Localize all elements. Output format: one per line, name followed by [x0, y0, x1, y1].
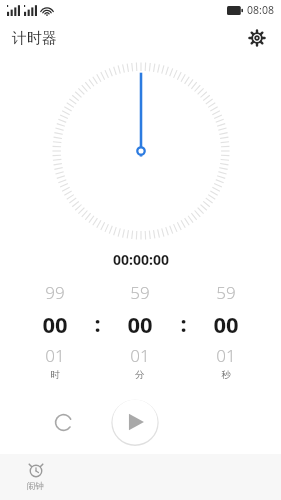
button[interactable]: 99 [22, 281, 87, 381]
staticText: 00 [127, 309, 153, 339]
staticText: 01 [130, 344, 150, 367]
button[interactable]: 计时器 [12, 29, 57, 48]
button[interactable]: 59 [107, 281, 173, 381]
staticText: 59 [216, 281, 236, 304]
staticText: 00 [42, 309, 68, 339]
button[interactable]: Settings [243, 24, 271, 52]
staticText: 闹钟 [27, 481, 44, 492]
staticText: 01 [45, 344, 65, 367]
button[interactable]: 59 [193, 281, 259, 381]
staticText: 时 [50, 369, 60, 381]
staticText: 99 [45, 281, 65, 304]
staticText: : [94, 308, 101, 338]
staticText: 08:08 [247, 3, 274, 17]
staticText: 01 [216, 344, 236, 367]
button[interactable]: 闹钟 [0, 454, 71, 500]
staticText: 00:00:00 [113, 250, 169, 269]
staticText: 计时器 [12, 29, 57, 48]
staticText: 00 [213, 309, 239, 339]
button[interactable]: Start [111, 398, 159, 446]
button[interactable]: Reset [46, 405, 80, 439]
staticText: 分 [135, 369, 145, 381]
staticText: : [180, 308, 187, 338]
staticText: 59 [130, 281, 150, 304]
staticText: 秒 [221, 369, 231, 381]
